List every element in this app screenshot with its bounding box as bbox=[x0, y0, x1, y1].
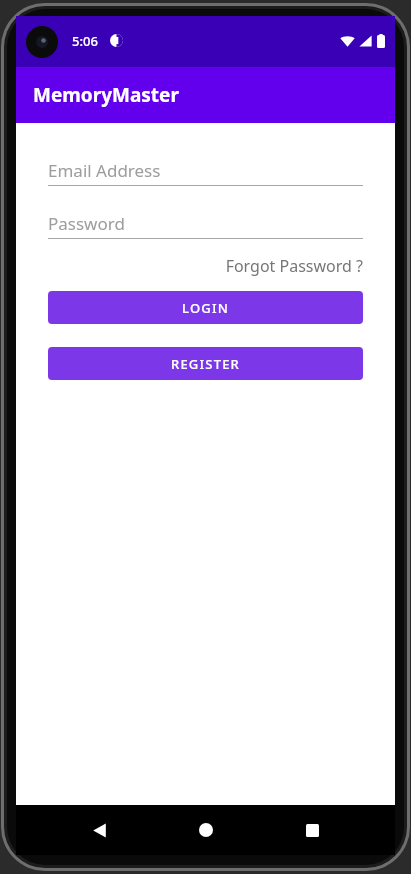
button[interactable]: Email Address bbox=[48, 155, 363, 186]
button[interactable]: Home bbox=[182, 806, 230, 854]
staticText: LOGIN bbox=[182, 299, 230, 317]
button[interactable]: Back bbox=[75, 806, 123, 854]
staticText: 5:06 bbox=[72, 32, 98, 50]
staticText: Password bbox=[48, 212, 125, 235]
button[interactable]: LOGIN bbox=[48, 291, 363, 324]
staticText: REGISTER bbox=[171, 355, 241, 373]
staticText: Email Address bbox=[48, 159, 161, 182]
staticText: MemoryMaster bbox=[33, 82, 179, 108]
button[interactable]: Password bbox=[48, 208, 363, 239]
button[interactable]: Forgot Password ? bbox=[48, 255, 363, 277]
button[interactable]: REGISTER bbox=[48, 347, 363, 380]
staticText: Forgot Password ? bbox=[225, 255, 363, 277]
button[interactable]: Recent apps bbox=[288, 806, 336, 854]
